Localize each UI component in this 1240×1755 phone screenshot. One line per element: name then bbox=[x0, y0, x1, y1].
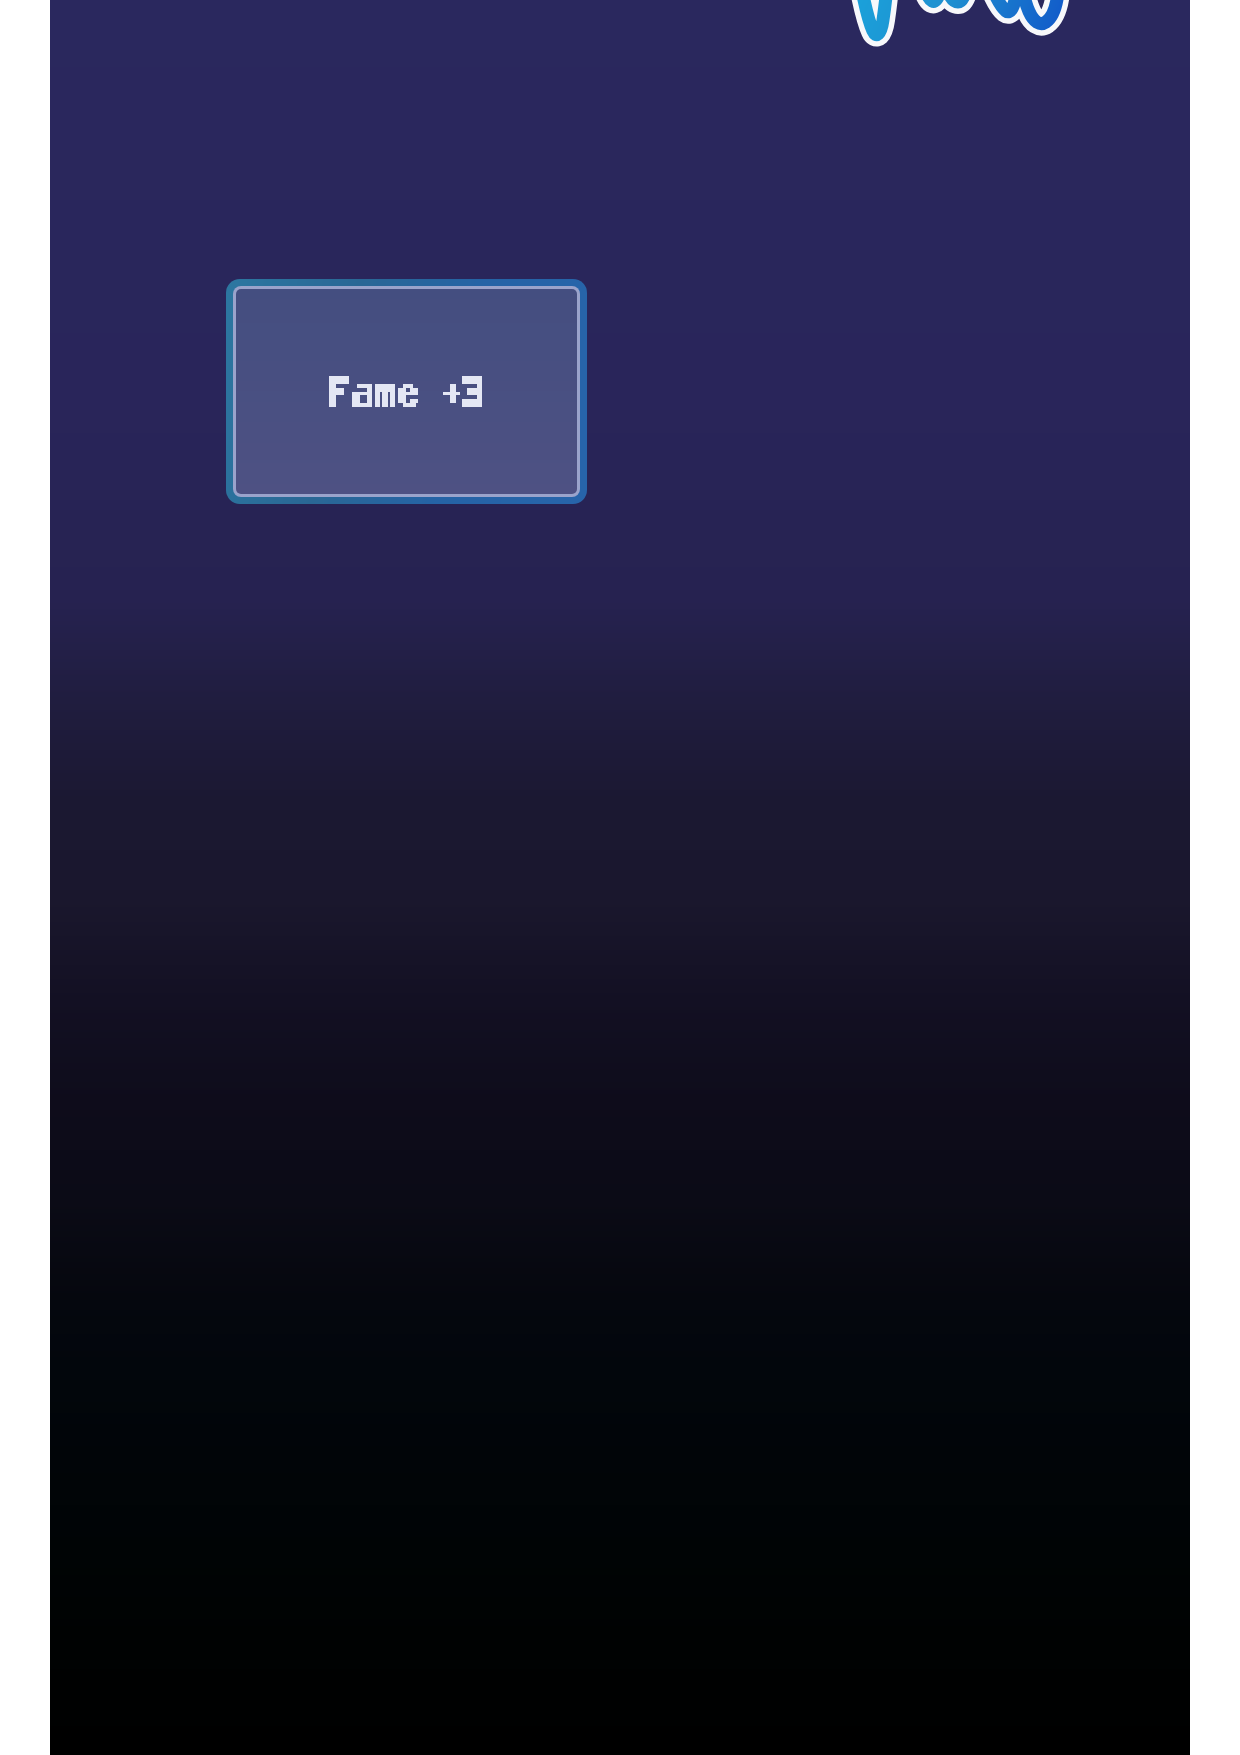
button[interactable]: Fame plus three reward bbox=[236, 289, 577, 494]
other: App logo bbox=[840, 0, 1090, 50]
